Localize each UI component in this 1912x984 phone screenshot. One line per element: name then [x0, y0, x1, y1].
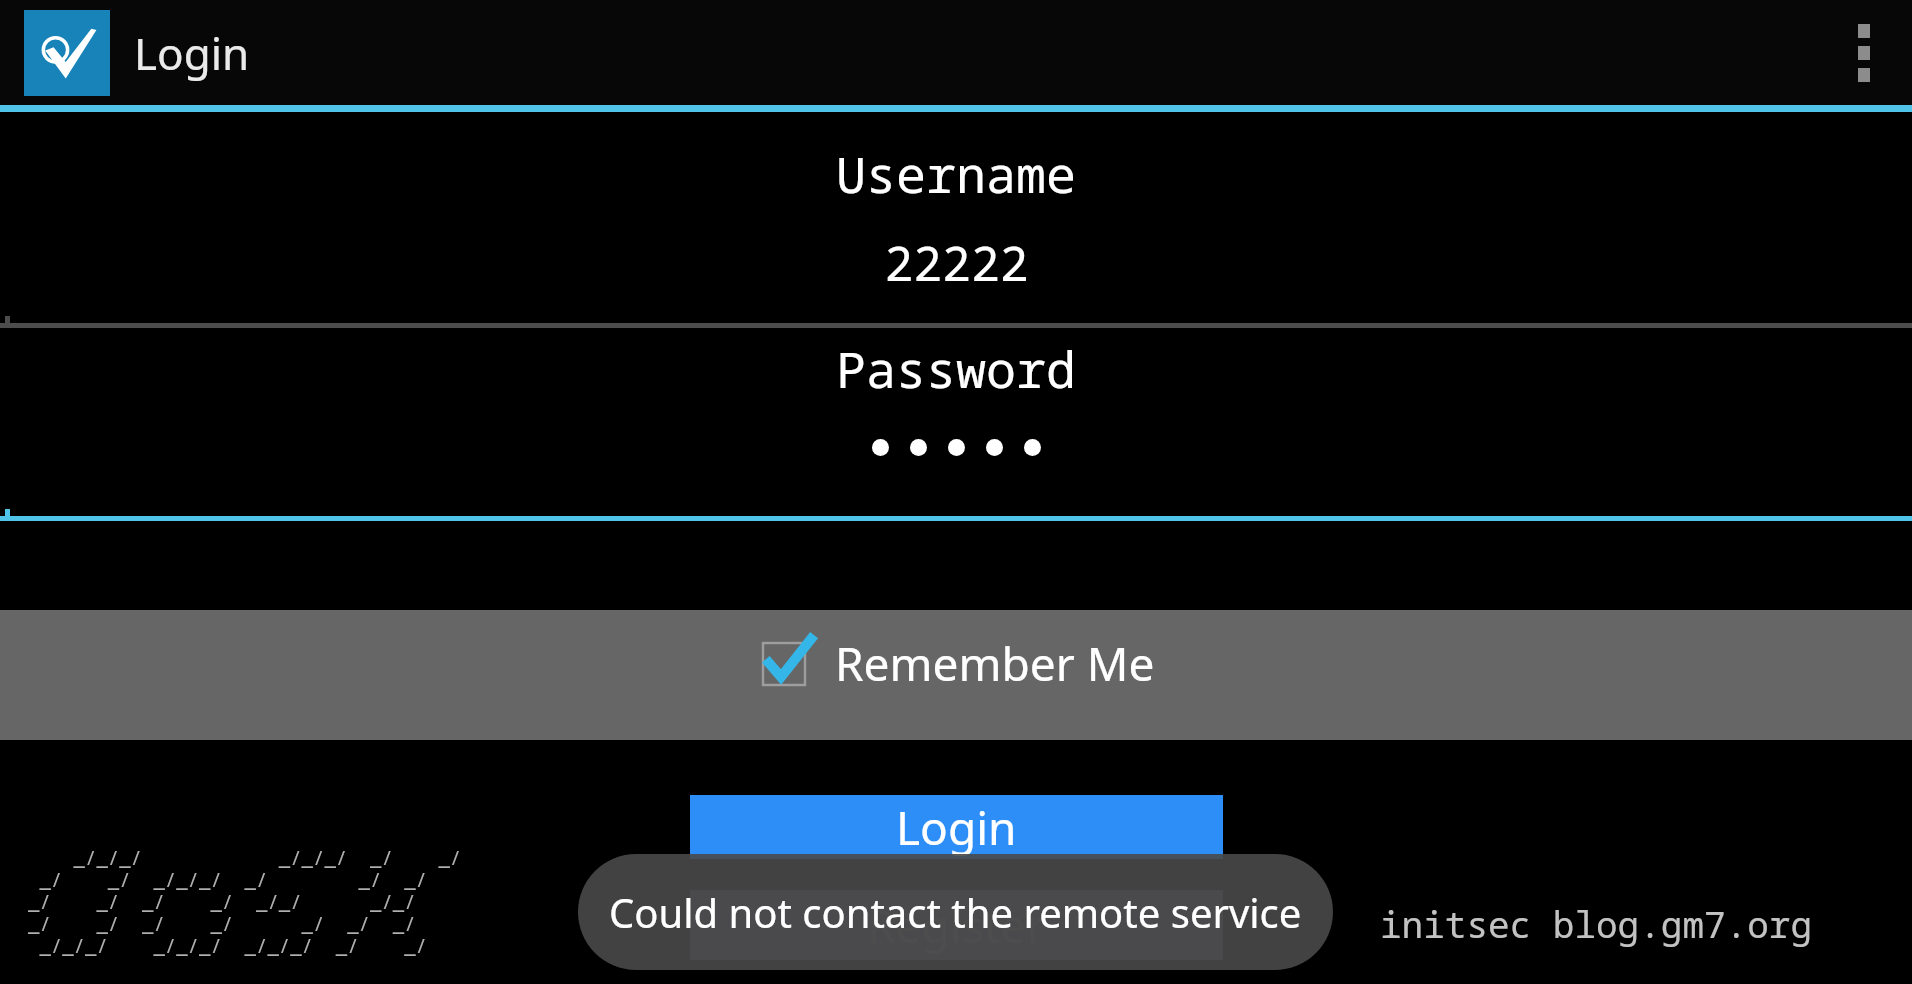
staticText: Password [836, 335, 1076, 403]
button[interactable]: Register [690, 890, 1223, 960]
button[interactable]: Username [0, 140, 1912, 295]
button[interactable]: More options [1816, 0, 1912, 105]
staticText: Username [836, 140, 1076, 208]
staticText: Login [134, 23, 250, 83]
staticText: _/_/_/ _/_/_/ _/ _/ _/ _/ _/_/_/ _/ _/ _… [28, 845, 473, 959]
staticText: Could not contact the remote service [609, 885, 1302, 939]
button[interactable]: Remember Me [0, 610, 1912, 740]
staticText: 22222 [884, 230, 1029, 295]
staticText: Remember Me [835, 632, 1155, 695]
staticText: Register [867, 894, 1046, 957]
staticText: initsec blog.gm7.org [1380, 900, 1813, 949]
staticText: Login [896, 796, 1017, 859]
button[interactable]: Login [690, 795, 1223, 859]
